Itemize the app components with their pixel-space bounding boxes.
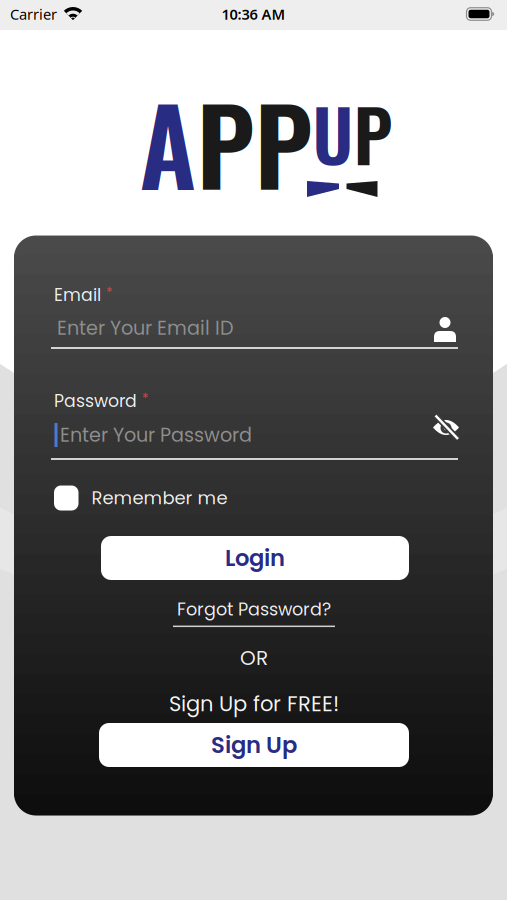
staticText: U — [312, 81, 353, 186]
button[interactable]: Forgot Password? — [173, 597, 335, 627]
button[interactable]: Enter Your Password — [51, 412, 458, 462]
staticText: Email — [54, 283, 101, 307]
staticText: A — [139, 64, 196, 220]
staticText: Login — [225, 542, 285, 574]
button[interactable]: Enter Your Email ID — [51, 308, 458, 352]
button[interactable]: Show password — [432, 414, 460, 440]
staticText: Remember me — [91, 485, 227, 511]
staticText: PP — [196, 64, 312, 220]
staticText: Enter Your Email ID — [57, 315, 234, 341]
staticText: Carrier — [10, 4, 57, 24]
staticText: * — [106, 284, 112, 302]
staticText: Password — [54, 389, 137, 413]
staticText: P — [353, 81, 392, 186]
staticText: Enter Your Password — [60, 422, 252, 448]
button[interactable]: Sign Up — [99, 723, 409, 767]
staticText: Sign Up for FREE! — [169, 689, 339, 719]
button[interactable]: Remember me — [54, 485, 227, 511]
staticText: 10:36 AM — [221, 4, 285, 24]
staticText: * — [142, 390, 148, 408]
staticText: Forgot Password? — [177, 597, 331, 621]
staticText: Sign Up — [211, 729, 297, 761]
staticText: OR — [240, 644, 268, 672]
button[interactable]: Login — [101, 536, 409, 580]
